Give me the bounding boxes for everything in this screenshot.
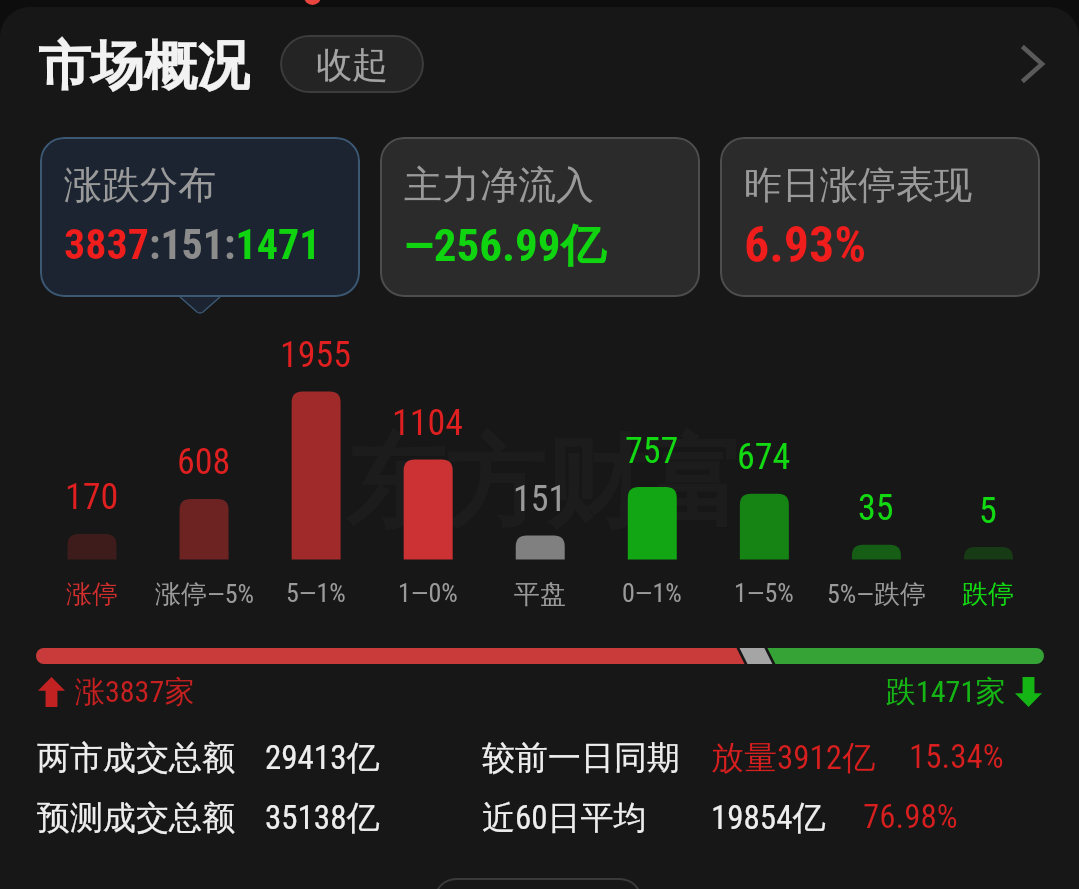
- button[interactable]: 昨日涨停表现: [720, 137, 1040, 297]
- staticText: 东方财富: [345, 421, 745, 547]
- staticText: 76.98%: [863, 797, 958, 836]
- staticText: 1955: [280, 334, 352, 376]
- staticText: 两市成交总额: [37, 737, 235, 779]
- staticText: 151: [513, 478, 567, 520]
- staticText: 5: [979, 490, 997, 532]
- staticText: 涨停—5%: [155, 578, 254, 611]
- staticText: 跌1471家: [886, 673, 1006, 711]
- staticText: 608: [177, 441, 231, 483]
- staticText: 涨3837家: [75, 673, 195, 711]
- staticText: 757: [625, 430, 679, 472]
- staticText: 29413亿: [265, 737, 380, 779]
- staticText: 昨日涨停表现: [744, 161, 972, 209]
- staticText: 预测成交总额: [37, 797, 235, 839]
- staticText: 市场概况: [38, 33, 250, 95]
- staticText: 19854亿: [711, 797, 826, 839]
- button[interactable]: 收起: [280, 35, 424, 93]
- button[interactable]: 涨跌分布: [40, 137, 360, 297]
- staticText: 主力净流入: [404, 161, 594, 209]
- button[interactable]: 主力净流入: [380, 137, 700, 297]
- staticText: 15.34%: [909, 737, 1004, 776]
- staticText: 涨停: [66, 578, 118, 611]
- staticText: 674: [737, 436, 791, 478]
- staticText: 平盘: [514, 578, 566, 611]
- staticText: —256.99亿: [404, 218, 606, 275]
- staticText: 近60日平均: [482, 797, 647, 839]
- staticText: 0—1%: [622, 578, 682, 608]
- staticText: 3837:151:1471: [64, 220, 321, 269]
- button[interactable]: More: [995, 33, 1071, 95]
- staticText: 1104: [392, 402, 464, 444]
- staticText: 收起: [316, 42, 388, 87]
- staticText: 35138亿: [265, 797, 380, 839]
- staticText: 跌停: [962, 578, 1014, 611]
- staticText: 5%—跌停: [827, 578, 926, 611]
- staticText: 170: [65, 476, 119, 518]
- staticText: 1—5%: [734, 578, 794, 608]
- staticText: 35: [858, 487, 894, 529]
- staticText: 放量3912亿: [711, 737, 876, 779]
- staticText: 1—0%: [398, 578, 458, 608]
- staticText: 较前一日同期: [482, 737, 680, 779]
- staticText: 涨跌分布: [64, 161, 216, 209]
- staticText: 5—1%: [286, 578, 346, 608]
- staticText: 6.93%: [744, 216, 867, 275]
